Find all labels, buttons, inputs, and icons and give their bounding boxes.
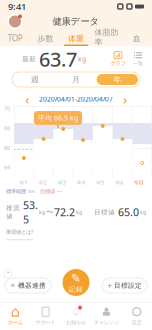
button[interactable]: 推奨値とは? [6, 228, 33, 235]
button[interactable]: 展開 [4, 270, 12, 278]
staticText: 一覧 [133, 60, 143, 67]
staticText: ⌃ [6, 271, 10, 277]
button[interactable]: 設定 [122, 302, 152, 330]
staticText: 9:41 [8, 0, 26, 13]
staticText: 体重 [68, 34, 84, 43]
button[interactable]: 血 [122, 30, 152, 46]
staticText: 66 [4, 144, 10, 151]
staticText: 64 [4, 164, 10, 171]
staticText: 4/5 [96, 179, 104, 186]
staticText: 機器連携 [18, 281, 46, 290]
staticText: チャレンジ [94, 319, 119, 326]
staticText: + [107, 279, 112, 292]
staticText: 体脂肪率 [94, 27, 118, 47]
staticText: 4/2 [39, 179, 47, 186]
button[interactable]: グラフ [108, 51, 128, 67]
button[interactable]: 月 [55, 74, 97, 85]
button[interactable]: チャレンジ [91, 302, 122, 330]
staticText: 目標値 [40, 188, 55, 195]
staticText: ✳ [10, 282, 16, 289]
staticText: 最新 [22, 55, 36, 63]
staticText: 65.0 [118, 205, 139, 219]
staticText: サポート [36, 319, 56, 326]
staticText: 4/4 [77, 179, 85, 186]
button[interactable]: 年 [97, 74, 138, 85]
staticText: ホーム [8, 319, 23, 326]
staticText: 歩数 [38, 34, 54, 43]
staticText: 今日 [133, 179, 143, 186]
staticText: 63.7 [39, 46, 77, 72]
button[interactable]: プロフィール [6, 12, 24, 30]
staticText: 推奨値 [6, 204, 20, 220]
staticText: 目標設定 [114, 281, 142, 290]
staticText: ‹ [25, 90, 29, 108]
staticText: ✎ [71, 272, 81, 285]
staticText: 70 [4, 105, 10, 112]
staticText: TOP [8, 33, 23, 43]
button[interactable]: ✎ [60, 266, 92, 298]
staticText: 53.5 [23, 198, 38, 226]
staticText: 〜 [46, 207, 54, 217]
staticText: 標準範囲 [6, 188, 26, 195]
staticText: 設定 [132, 319, 142, 326]
staticText: kg [76, 209, 82, 216]
staticText: 推奨値とは? [6, 228, 33, 235]
staticText: 血 [133, 34, 141, 43]
staticText: 72.2 [54, 205, 75, 219]
staticText: 年 [113, 75, 121, 84]
button[interactable]: 歩数 [30, 30, 61, 46]
button[interactable]: 次の期間 [119, 93, 131, 105]
button[interactable]: 体重 [61, 30, 91, 46]
staticText: ♤ [71, 306, 81, 318]
staticText: 4/3 [58, 179, 66, 186]
staticText: 4/6 [115, 179, 123, 186]
staticText: お知らせ [66, 319, 86, 326]
staticText: 平均 66.9 kg [38, 113, 78, 122]
button[interactable]: ♤ [61, 302, 91, 330]
staticText: 目標値 [94, 208, 115, 216]
staticText: 2020/04/01-2020/04/07 [39, 95, 113, 103]
staticText: ⌂ [11, 303, 20, 320]
staticText: kg [39, 209, 45, 216]
staticText: › [123, 90, 127, 108]
staticText: 68 [4, 125, 10, 132]
button[interactable]: 一覧 [128, 51, 148, 67]
staticText: kg [140, 209, 146, 216]
staticText: 週 [31, 75, 39, 84]
button[interactable]: 週 [14, 74, 55, 85]
button[interactable]: TOP [0, 30, 30, 46]
button[interactable]: 体脂肪率 [91, 30, 122, 46]
button[interactable]: 前の期間 [21, 93, 33, 105]
staticText: 記録 [69, 285, 83, 293]
staticText: kg [78, 55, 86, 63]
staticText: 月 [72, 75, 80, 84]
button[interactable]: サポート [30, 302, 61, 330]
button[interactable]: ✳ [5, 278, 51, 293]
button[interactable]: + [102, 278, 147, 293]
staticText: 4/1 [20, 179, 28, 186]
staticText: 健康データ [52, 16, 99, 27]
button[interactable]: ⌂ [0, 302, 30, 330]
staticText: グラフ [110, 60, 125, 67]
